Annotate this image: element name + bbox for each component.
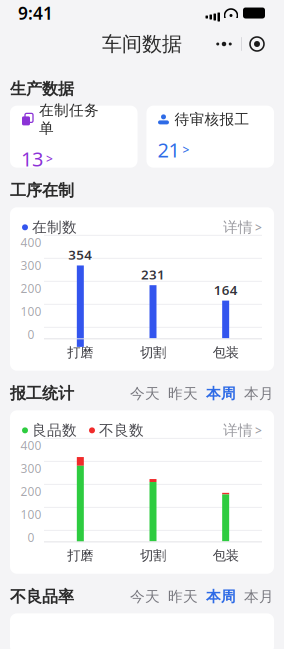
- button[interactable]: More: [207, 33, 241, 55]
- staticText: 0: [27, 326, 34, 342]
- button[interactable]: 昨天: [168, 588, 198, 606]
- staticText: 打磨: [67, 547, 93, 564]
- staticText: 164: [214, 281, 238, 299]
- button[interactable]: 本月: [244, 588, 274, 606]
- staticText: 报工统计: [10, 384, 74, 403]
- staticText: 本月: [244, 588, 274, 606]
- staticText: 工序在制: [10, 181, 74, 200]
- staticText: 生产数据: [10, 79, 74, 99]
- button[interactable]: 在制任务单: [10, 106, 137, 168]
- staticText: 包装: [213, 547, 239, 564]
- staticText: 0: [27, 529, 34, 545]
- staticText: 详情: [223, 218, 253, 236]
- staticText: 切割: [140, 344, 166, 361]
- staticText: 100: [20, 506, 41, 522]
- staticText: 231: [141, 265, 165, 283]
- staticText: >: [182, 142, 189, 158]
- staticText: 400: [20, 234, 41, 250]
- staticText: 良品数: [32, 421, 77, 439]
- button[interactable]: Close: [242, 33, 272, 55]
- staticText: 本周: [206, 384, 236, 402]
- staticText: 在制任务单: [39, 101, 99, 137]
- staticText: 今天: [130, 588, 160, 606]
- button[interactable]: 今天: [130, 384, 160, 402]
- button[interactable]: 昨天: [168, 384, 198, 402]
- button[interactable]: 本周: [206, 588, 236, 606]
- staticText: 354: [68, 246, 92, 263]
- staticText: 车间数据: [102, 32, 182, 56]
- staticText: 21: [157, 136, 179, 163]
- staticText: 200: [20, 483, 41, 499]
- staticText: 100: [20, 303, 41, 319]
- staticText: 昨天: [168, 384, 198, 402]
- staticText: 待审核报工: [174, 110, 249, 128]
- button[interactable]: 详情: [223, 421, 262, 439]
- staticText: 切割: [140, 547, 166, 564]
- staticText: 在制数: [32, 218, 77, 236]
- staticText: 300: [20, 460, 41, 476]
- staticText: 包装: [213, 344, 239, 361]
- staticText: 13: [21, 145, 43, 172]
- staticText: 打磨: [67, 344, 93, 361]
- staticText: 详情: [223, 421, 253, 439]
- button[interactable]: 待审核报工: [146, 106, 274, 168]
- staticText: 本周: [206, 588, 236, 606]
- button[interactable]: 详情: [223, 218, 262, 236]
- button[interactable]: 本月: [244, 384, 274, 402]
- staticText: 今天: [130, 384, 160, 402]
- staticText: 昨天: [168, 588, 198, 606]
- staticText: >: [255, 219, 262, 235]
- staticText: 不良数: [99, 421, 144, 439]
- button[interactable]: 本周: [206, 384, 236, 402]
- staticText: 300: [20, 257, 41, 273]
- staticText: 本月: [244, 384, 274, 402]
- staticText: 不良品率: [10, 587, 74, 606]
- staticText: 200: [20, 280, 41, 296]
- staticText: 400: [20, 437, 41, 453]
- staticText: 9:41: [18, 1, 53, 24]
- staticText: >: [255, 422, 262, 438]
- staticText: >: [46, 151, 53, 167]
- button[interactable]: 今天: [130, 588, 160, 606]
